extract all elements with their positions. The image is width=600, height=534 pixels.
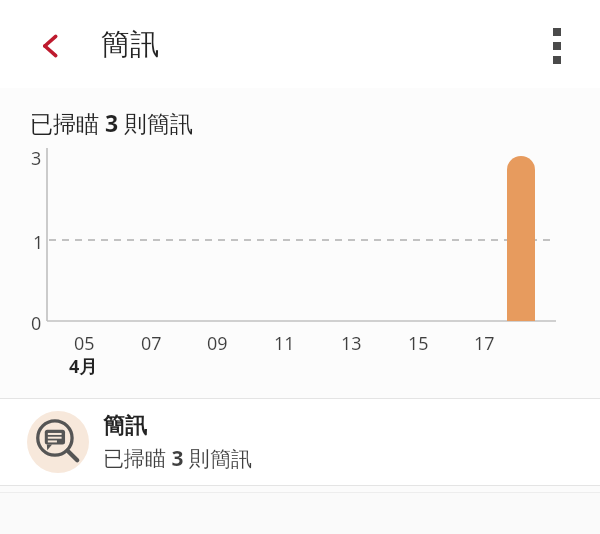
staticText: 簡訊 xyxy=(103,412,147,440)
staticText: 4月 xyxy=(69,354,98,379)
staticText: 05 xyxy=(74,331,95,356)
staticText: 簡訊 xyxy=(101,26,159,63)
staticText: 09 xyxy=(207,331,228,356)
staticText: 1 xyxy=(33,230,44,255)
button[interactable]: More options xyxy=(534,23,580,69)
staticText: 13 xyxy=(341,331,362,356)
staticText: 15 xyxy=(408,331,429,356)
button[interactable]: 簡訊 xyxy=(0,399,600,485)
staticText: 0 xyxy=(31,311,42,336)
button[interactable]: Back xyxy=(27,23,73,69)
staticText: 3 xyxy=(31,146,42,171)
staticText: 已掃瞄 3 則簡訊 xyxy=(103,444,252,473)
staticText: 11 xyxy=(274,331,295,356)
staticText: 已掃瞄 3 則簡訊 xyxy=(30,107,194,138)
staticText: 07 xyxy=(141,331,162,356)
staticText: 17 xyxy=(474,331,495,356)
